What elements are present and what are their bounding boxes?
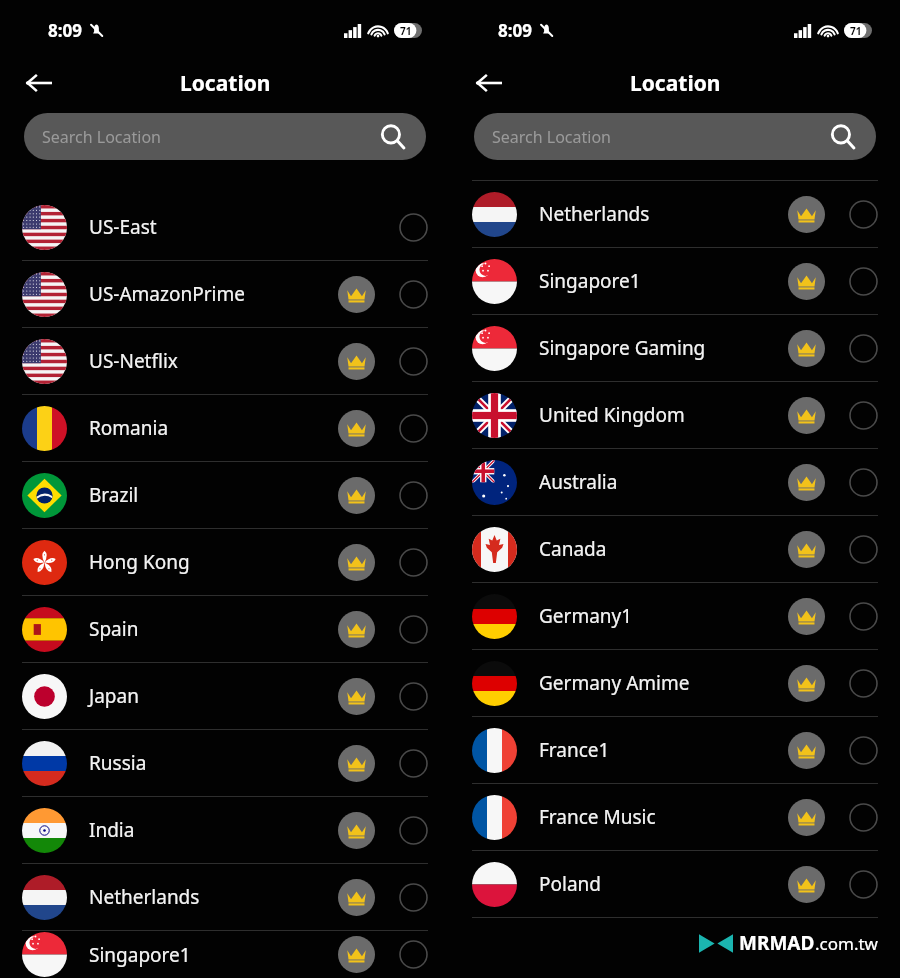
button[interactable]: Premium	[338, 745, 375, 782]
button[interactable]: Select	[399, 414, 428, 443]
button[interactable]: Select	[849, 267, 878, 296]
staticText: Russia	[89, 750, 338, 776]
button[interactable]: Select	[849, 468, 878, 497]
button[interactable]: Singapore Gaming	[450, 315, 900, 381]
button[interactable]: Hong Kong	[0, 529, 450, 595]
staticText: US-Netflix	[89, 348, 338, 374]
staticText: 8:09	[498, 19, 532, 42]
button[interactable]: Select	[849, 870, 878, 899]
button[interactable]: Select	[849, 736, 878, 765]
staticText: Singapore1	[539, 268, 788, 294]
button[interactable]: Search Location	[474, 113, 876, 160]
staticText: France Music	[539, 804, 788, 830]
button[interactable]: Spain	[0, 596, 450, 662]
staticText: Singapore1	[89, 942, 338, 968]
button[interactable]: Premium	[788, 263, 825, 300]
button[interactable]: Canada	[450, 516, 900, 582]
button[interactable]: Premium	[788, 397, 825, 434]
button[interactable]: Singapore1	[450, 248, 900, 314]
button[interactable]: Netherlands	[450, 181, 900, 247]
staticText: Germany1	[539, 603, 788, 629]
button[interactable]: Select	[399, 940, 428, 969]
staticText: United Kingdom	[539, 402, 788, 428]
button[interactable]: Premium	[338, 410, 375, 447]
button[interactable]: Select	[399, 883, 428, 912]
staticText: Australia	[539, 469, 788, 495]
button[interactable]: Premium	[788, 196, 825, 233]
button[interactable]: Germany Amime	[450, 650, 900, 716]
staticText: US-AmazonPrime	[89, 281, 338, 307]
button[interactable]: Select	[849, 401, 878, 430]
button[interactable]: Premium	[338, 812, 375, 849]
button[interactable]: US-Netflix	[0, 328, 450, 394]
button[interactable]: Select	[849, 334, 878, 363]
button[interactable]: Select	[849, 669, 878, 698]
staticText: Singapore Gaming	[539, 335, 788, 361]
button[interactable]: Back	[470, 64, 508, 102]
button[interactable]: Singapore1	[0, 931, 450, 978]
button[interactable]: Select	[399, 749, 428, 778]
button[interactable]: Premium	[338, 477, 375, 514]
button[interactable]: Germany1	[450, 583, 900, 649]
button[interactable]: Poland	[450, 851, 900, 917]
button[interactable]: Select	[399, 280, 428, 309]
button[interactable]: US-AmazonPrime	[0, 261, 450, 327]
button[interactable]: Premium	[788, 799, 825, 836]
staticText: France1	[539, 737, 788, 763]
button[interactable]: Romania	[0, 395, 450, 461]
button[interactable]: Select	[849, 200, 878, 229]
button[interactable]: US-East	[0, 194, 450, 260]
staticText: .com.tw	[815, 932, 878, 955]
staticText: Location	[180, 69, 271, 98]
staticText: Canada	[539, 536, 788, 562]
button[interactable]: Select	[399, 481, 428, 510]
button[interactable]: Back	[20, 64, 58, 102]
button[interactable]: Premium	[788, 598, 825, 635]
button[interactable]: France1	[450, 717, 900, 783]
button[interactable]: Netherlands	[0, 864, 450, 930]
staticText: India	[89, 817, 338, 843]
button[interactable]: Premium	[788, 330, 825, 367]
staticText: Japan	[89, 683, 338, 709]
button[interactable]: Search Location	[24, 113, 426, 160]
staticText: Spain	[89, 616, 338, 642]
button[interactable]: Japan	[0, 663, 450, 729]
button[interactable]: Premium	[338, 611, 375, 648]
button[interactable]: Select	[849, 803, 878, 832]
button[interactable]: Select	[399, 816, 428, 845]
button[interactable]: Premium	[338, 879, 375, 916]
button[interactable]: Premium	[788, 866, 825, 903]
staticText: Netherlands	[539, 201, 788, 227]
button[interactable]: Premium	[338, 343, 375, 380]
button[interactable]: France Music	[450, 784, 900, 850]
button[interactable]: Russia	[0, 730, 450, 796]
staticText: Hong Kong	[89, 549, 338, 575]
button[interactable]: Premium	[338, 678, 375, 715]
button[interactable]: Select	[399, 548, 428, 577]
staticText: Germany Amime	[539, 670, 788, 696]
button[interactable]: India	[0, 797, 450, 863]
button[interactable]: Premium	[338, 936, 375, 973]
button[interactable]: Premium	[788, 732, 825, 769]
staticText: 71	[400, 24, 412, 38]
button[interactable]: Premium	[788, 531, 825, 568]
button[interactable]: Premium	[788, 665, 825, 702]
button[interactable]: Select	[399, 213, 428, 242]
button[interactable]: Premium	[788, 464, 825, 501]
button[interactable]: United Kingdom	[450, 382, 900, 448]
button[interactable]: Brazil	[0, 462, 450, 528]
staticText: Location	[630, 69, 721, 98]
staticText: Search Location	[42, 126, 161, 148]
staticText: 71	[850, 24, 862, 38]
button[interactable]: Select	[849, 535, 878, 564]
button[interactable]: Select	[849, 602, 878, 631]
staticText: Romania	[89, 415, 338, 441]
button[interactable]: Premium	[338, 544, 375, 581]
button[interactable]: Premium	[338, 276, 375, 313]
button[interactable]: Select	[399, 347, 428, 376]
button[interactable]: Select	[399, 615, 428, 644]
button[interactable]: Select	[399, 682, 428, 711]
staticText: Search Location	[492, 126, 611, 148]
staticText: Poland	[539, 871, 788, 897]
button[interactable]: Australia	[450, 449, 900, 515]
